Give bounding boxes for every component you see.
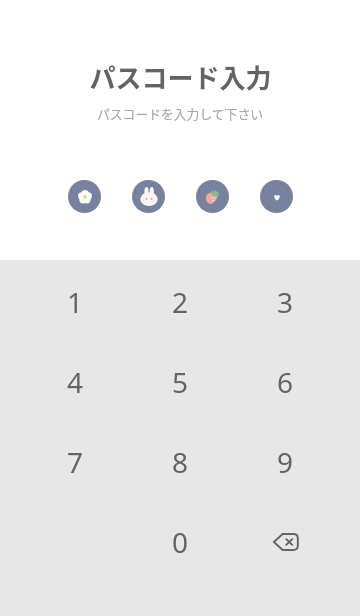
staticText: パスコードを入力して下さい: [97, 104, 263, 123]
staticText: 1: [67, 283, 84, 321]
staticText: 4: [67, 363, 84, 401]
button[interactable]: 8: [128, 422, 233, 502]
staticText: 5: [172, 363, 189, 401]
button[interactable]: 2: [128, 262, 233, 342]
button[interactable]: [260, 180, 293, 213]
staticText: パスコード入力: [89, 58, 272, 96]
staticText: 7: [67, 443, 84, 481]
button[interactable]: 1: [22, 262, 128, 342]
button[interactable]: 9: [233, 422, 338, 502]
button[interactable]: 0: [128, 502, 233, 582]
button[interactable]: [196, 180, 229, 213]
button[interactable]: 5: [128, 342, 233, 422]
staticText: 9: [277, 443, 294, 481]
staticText: 8: [172, 443, 189, 481]
button[interactable]: 7: [22, 422, 128, 502]
button[interactable]: [68, 180, 101, 213]
button[interactable]: 3: [233, 262, 338, 342]
button[interactable]: [132, 180, 165, 213]
other: Backspace: [273, 532, 299, 552]
staticText: 3: [277, 283, 294, 321]
button[interactable]: 4: [22, 342, 128, 422]
staticText: 6: [277, 363, 294, 401]
staticText: 0: [172, 523, 189, 561]
button[interactable]: 6: [233, 342, 338, 422]
button[interactable]: Backspace: [233, 502, 338, 582]
staticText: 2: [172, 283, 189, 321]
